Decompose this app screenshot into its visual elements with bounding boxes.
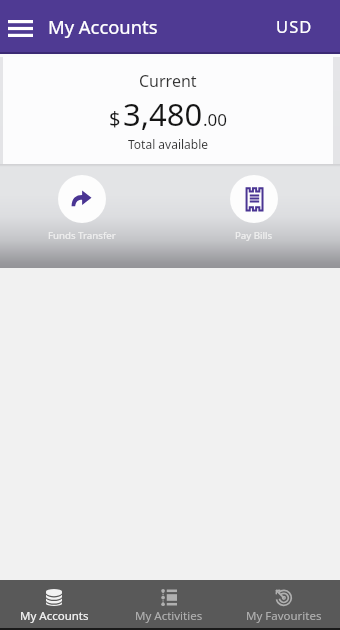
button[interactable]: Funds Transfer — [23, 168, 140, 242]
button[interactable]: My Favourites — [227, 580, 340, 628]
staticText: .00 — [203, 108, 228, 131]
staticText: USD — [276, 15, 313, 37]
button[interactable]: Current — [3, 57, 333, 164]
staticText: My Activities — [135, 608, 203, 624]
staticText: My Accounts — [20, 608, 89, 624]
button[interactable]: My Accounts — [0, 580, 111, 628]
staticText: $ — [109, 105, 121, 132]
button[interactable]: Open navigation menu — [0, 0, 41, 52]
button[interactable]: Pay Bills — [195, 168, 312, 242]
staticText: My Accounts — [48, 14, 158, 39]
button[interactable]: USD — [262, 5, 340, 47]
staticText: Funds Transfer — [48, 229, 116, 242]
staticText: Total available — [128, 136, 209, 152]
button[interactable]: My Activities — [112, 580, 225, 628]
staticText: My Favourites — [246, 608, 322, 624]
staticText: Current — [139, 70, 197, 92]
staticText: Pay Bills — [235, 229, 273, 242]
staticText: 3,480 — [123, 93, 203, 135]
